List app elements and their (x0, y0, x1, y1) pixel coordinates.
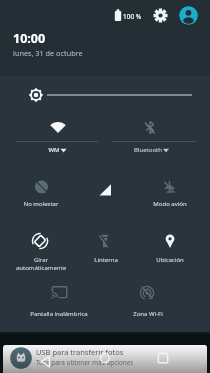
staticText: USB para transferir fotos (36, 347, 176, 357)
button[interactable] (74, 172, 138, 216)
staticText: 100 % (123, 12, 153, 21)
staticText: Bluetooth (103, 146, 193, 154)
button[interactable] (93, 346, 117, 370)
staticText: No molestar (9, 200, 73, 208)
button[interactable] (151, 346, 175, 370)
staticText: WM (12, 146, 96, 154)
staticText: automáticamente (7, 264, 75, 272)
button[interactable] (138, 172, 202, 216)
button[interactable] (12, 112, 102, 160)
button[interactable] (3, 345, 207, 373)
button[interactable] (22, 82, 194, 108)
staticText: 10:00 (13, 30, 93, 47)
button[interactable] (104, 282, 192, 324)
staticText: Pantalla inalámbrica (14, 310, 104, 318)
button[interactable] (74, 228, 138, 278)
button[interactable] (179, 6, 198, 25)
button[interactable] (14, 282, 104, 324)
button[interactable] (9, 228, 73, 278)
staticText: Zona Wi-Fi (104, 310, 192, 318)
button[interactable] (103, 112, 199, 160)
staticText: Linterna (74, 256, 138, 264)
button[interactable] (33, 350, 57, 373)
staticText: Modo avión (138, 200, 202, 208)
button[interactable] (9, 172, 73, 216)
staticText: lunes, 31 de octubre (13, 48, 133, 58)
button[interactable] (138, 228, 202, 278)
staticText: Girar (9, 256, 73, 264)
staticText: Toca para obtener más opciones (36, 358, 196, 367)
button[interactable] (151, 6, 170, 25)
staticText: Ubicación (138, 256, 202, 264)
